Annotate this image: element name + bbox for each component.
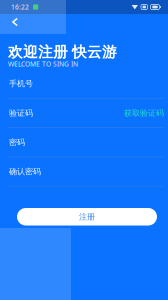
staticText: 欢迎注册 快云游 (8, 43, 117, 61)
button[interactable]: 获取验证码 (116, 104, 164, 122)
staticText: 验证码 (9, 108, 33, 118)
button[interactable]: Back (5, 12, 25, 32)
staticText: 注册 (79, 212, 95, 222)
staticText: 手机号 (9, 79, 33, 89)
staticText: 16:22 (11, 3, 29, 11)
staticText: 获取验证码 (124, 108, 164, 118)
button[interactable]: 注册 (17, 208, 157, 225)
staticText: WELCOME TO SING IN (8, 59, 78, 68)
staticText: 密码 (9, 137, 25, 147)
staticText: 确认密码 (9, 167, 41, 176)
